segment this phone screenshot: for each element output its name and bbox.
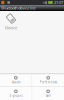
button[interactable]: Ayuda <box>0 73 32 86</box>
staticText: Preferencias <box>40 80 57 84</box>
staticText: Bluetooth device list <box>1 5 35 11</box>
staticText: 4 grupos <box>9 94 22 97</box>
button[interactable]: Salir <box>32 87 64 100</box>
staticText: 21:07 <box>54 0 63 5</box>
staticText: Ayuda <box>12 80 20 84</box>
button[interactable]: 4 grupos <box>0 87 32 100</box>
staticText: Device <box>5 25 17 30</box>
button[interactable]: Preferencias <box>32 73 64 86</box>
staticText: Salir <box>46 94 51 97</box>
button[interactable]: Device <box>0 13 22 30</box>
